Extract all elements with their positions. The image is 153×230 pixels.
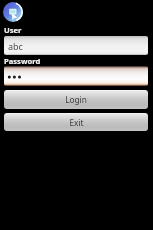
button[interactable]: Login <box>4 90 148 109</box>
staticText: Login <box>65 94 87 105</box>
button[interactable]: App icon <box>3 2 23 22</box>
button[interactable]: abc <box>4 36 148 55</box>
staticText: abc <box>8 40 23 52</box>
staticText: User <box>4 25 22 35</box>
staticText: Password <box>4 56 41 66</box>
button[interactable] <box>4 66 148 86</box>
staticText: Exit <box>69 117 84 128</box>
button[interactable]: Exit <box>4 113 148 131</box>
